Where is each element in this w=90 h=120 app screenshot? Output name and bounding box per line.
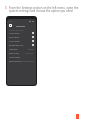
button[interactable]: About device bbox=[7, 55, 36, 59]
button[interactable]: Reset settings bbox=[7, 59, 36, 63]
staticText: Settings bbox=[16, 24, 26, 27]
button[interactable]: Notifications bbox=[7, 31, 36, 35]
button[interactable]: Date & time bbox=[7, 51, 36, 55]
staticText: SYSTEM SETTINGS bbox=[9, 29, 24, 31]
staticText: Reset settings bbox=[9, 60, 21, 62]
staticText: Background sync bbox=[9, 44, 24, 46]
staticText: Automatic bbox=[25, 52, 34, 54]
staticText: 1. bbox=[5, 6, 8, 10]
staticText: 9:41 bbox=[9, 20, 13, 23]
staticText: From the Settings section on the left me… bbox=[9, 6, 79, 13]
staticText: Notifications bbox=[9, 32, 20, 34]
staticText: English bbox=[28, 48, 34, 50]
staticText: Restore defaults bbox=[21, 60, 34, 62]
staticText: Dark theme bbox=[9, 36, 19, 38]
button[interactable]: Language bbox=[7, 47, 36, 51]
staticText: Date & time bbox=[9, 52, 20, 54]
button[interactable]: Background sync bbox=[7, 43, 36, 47]
button[interactable]: App icon bbox=[9, 24, 12, 27]
staticText: About device bbox=[9, 56, 20, 58]
staticText: Language bbox=[9, 48, 18, 50]
button[interactable]: Auto-update bbox=[7, 39, 36, 43]
button[interactable]: Dark theme bbox=[7, 35, 36, 39]
staticText: Auto-update bbox=[9, 40, 20, 42]
